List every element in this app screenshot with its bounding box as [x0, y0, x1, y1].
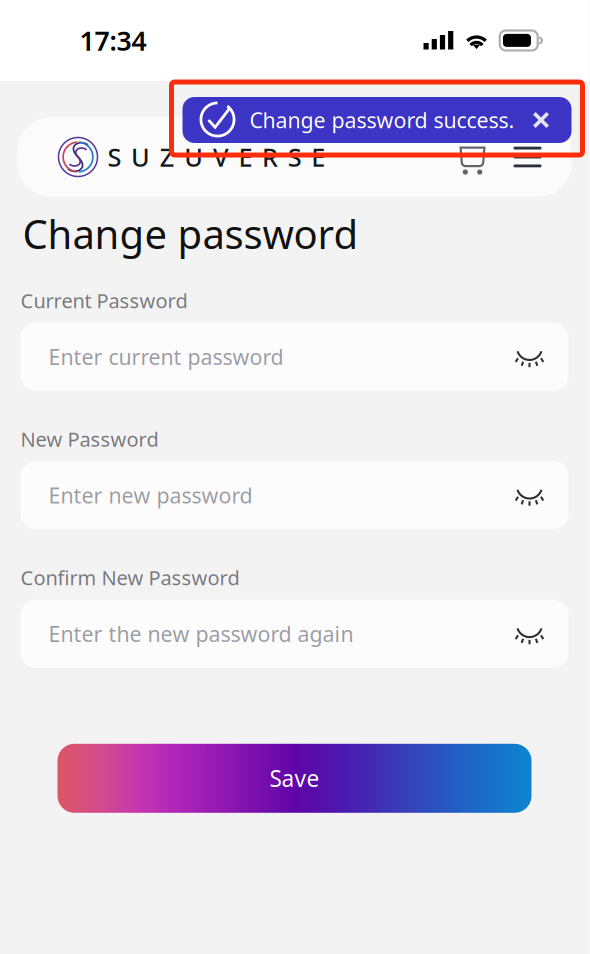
button[interactable]: Dismiss	[532, 111, 571, 128]
button[interactable]: Enter new password	[20, 461, 568, 529]
staticText: Enter current password	[48, 342, 283, 371]
staticText: New Password	[20, 426, 158, 452]
staticText: Current Password	[20, 287, 187, 314]
staticText: Save	[269, 763, 319, 793]
staticText: SUZUVERSE	[107, 140, 325, 174]
staticText: 17:34	[79, 23, 146, 58]
staticText: Enter the new password again	[48, 620, 353, 648]
button[interactable]: Save	[57, 744, 531, 813]
button[interactable]: Enter current password	[20, 323, 568, 391]
staticText: Change password	[22, 207, 358, 260]
button[interactable]: Enter the new password again	[20, 600, 568, 668]
staticText: Change password success.	[249, 106, 514, 134]
staticText: Enter new password	[48, 481, 252, 509]
staticText: Confirm New Password	[20, 564, 239, 591]
button[interactable]: Cart	[459, 137, 485, 176]
button[interactable]: Menu	[485, 146, 541, 167]
